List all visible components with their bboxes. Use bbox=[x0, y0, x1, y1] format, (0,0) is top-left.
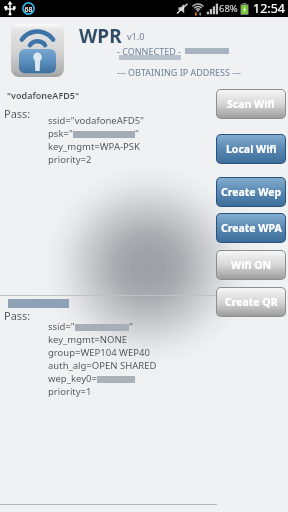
button[interactable]: Wifi ON bbox=[217, 251, 285, 279]
staticText: " bbox=[135, 127, 139, 140]
staticText: key_mgmt=NONE bbox=[48, 333, 127, 346]
staticText: priority=1 bbox=[48, 385, 92, 398]
staticText: v1.0 bbox=[127, 30, 145, 42]
staticText: "vodafoneAFD5" bbox=[7, 89, 80, 101]
staticText: 68% bbox=[219, 2, 238, 15]
staticText: WPR bbox=[79, 23, 122, 49]
staticText: ssid=" bbox=[48, 320, 75, 333]
staticText: Create WPA bbox=[221, 221, 282, 235]
staticText: Local Wifi bbox=[226, 142, 277, 156]
staticText: psk=" bbox=[48, 127, 73, 140]
button[interactable]: Local Wifi bbox=[217, 135, 285, 163]
staticText: 68 bbox=[22, 5, 35, 15]
staticText: 12:54 bbox=[253, 0, 285, 17]
staticText: priority=2 bbox=[48, 153, 92, 166]
button[interactable]: Create Wep bbox=[217, 178, 285, 206]
staticText: Pass: bbox=[4, 106, 31, 121]
staticText: ssid="vodafoneAFD5" bbox=[48, 114, 144, 127]
staticText: - CONNECTED - bbox=[117, 45, 181, 57]
staticText: Scan Wifi bbox=[227, 97, 275, 111]
staticText: Create Wep bbox=[221, 185, 282, 199]
staticText: key_mgmt=WPA-PSK bbox=[48, 140, 140, 153]
button[interactable]: Scan Wifi bbox=[217, 90, 285, 118]
staticText: group=WEP104 WEP40 bbox=[48, 346, 150, 359]
staticText: --- OBTAINING IP ADDRESS --- bbox=[117, 66, 241, 78]
other: WPR app icon bbox=[11, 24, 64, 77]
staticText: Create QR bbox=[225, 295, 278, 309]
staticText: Pass: bbox=[4, 308, 31, 323]
staticText: Wifi ON bbox=[231, 258, 272, 272]
staticText: auth_alg=OPEN SHARED bbox=[48, 359, 157, 372]
button[interactable]: Create QR bbox=[217, 288, 285, 316]
staticText: wep_key0= bbox=[48, 372, 97, 385]
button[interactable]: Create WPA bbox=[217, 214, 285, 242]
staticText: " bbox=[129, 320, 133, 333]
